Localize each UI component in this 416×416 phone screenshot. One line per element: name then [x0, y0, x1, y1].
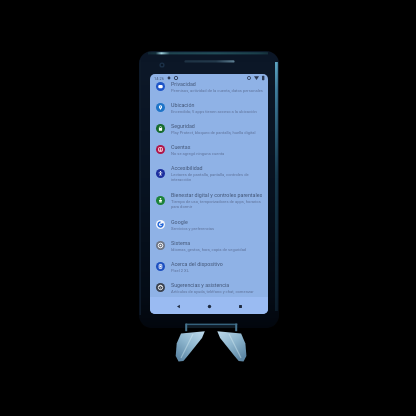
button[interactable]: Google [150, 214, 268, 235]
staticText: Acerca del dispositivo [171, 261, 223, 267]
button[interactable]: Sistema [150, 235, 268, 256]
staticText: Google [171, 219, 188, 225]
staticText: Privacidad [171, 81, 196, 87]
button[interactable]: Recent apps [234, 300, 246, 312]
button[interactable]: Privacidad [150, 76, 268, 97]
button[interactable]: Bienestar digital y controles parentales [150, 187, 268, 214]
staticText: Pixel 2 XL [171, 268, 189, 273]
staticText: Lectores de pantalla, pantalla, controle… [171, 172, 249, 182]
staticText: Encendido; 5 apps tienen acceso a la ubi… [171, 109, 257, 114]
staticText: Ubicación [171, 102, 195, 108]
button[interactable]: Acerca del dispositivo [150, 256, 268, 277]
button[interactable]: Home [203, 300, 215, 312]
staticText: 14:26 [154, 76, 164, 81]
staticText: Seguridad [171, 123, 195, 129]
staticText: Sugerencias y asistencia [171, 282, 230, 288]
staticText: Artículos de ayuda, teléfono y chat, com… [171, 289, 254, 294]
button[interactable]: Sugerencias y asistencia [150, 277, 268, 298]
staticText: Idiomas, gestos, hora, copia de segurida… [171, 247, 247, 252]
staticText: Tiempo de uso, temporizadores de apps, h… [171, 199, 261, 209]
staticText: No se agregó ninguna cuenta [171, 151, 225, 156]
staticText: Servicios y preferencias [171, 226, 215, 231]
staticText: Bienestar digital y controles parentales [171, 192, 263, 198]
staticText: Sistema [171, 240, 191, 246]
button[interactable]: Accesibilidad [150, 160, 268, 187]
staticText: Cuentas [171, 144, 191, 150]
staticText: Permisos, actividad de la cuenta, datos … [171, 88, 263, 93]
button[interactable]: Ubicación [150, 97, 268, 118]
staticText: Play Protect, bloqueo de pantalla, huell… [171, 130, 256, 135]
staticText: Accesibilidad [171, 165, 203, 171]
button[interactable]: Seguridad [150, 118, 268, 139]
button[interactable]: Back [172, 300, 184, 312]
button[interactable]: Cuentas [150, 139, 268, 160]
